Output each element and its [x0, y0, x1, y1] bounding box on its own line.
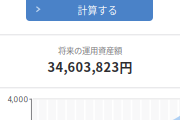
staticText: 計算する: [77, 3, 117, 17]
staticText: 4,000: [7, 95, 28, 104]
staticText: 将来の運用資産額: [58, 44, 122, 56]
button[interactable]: [0, 0, 180, 120]
staticText: 34,603,823円: [47, 57, 132, 75]
